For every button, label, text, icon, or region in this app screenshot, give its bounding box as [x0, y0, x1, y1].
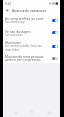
button[interactable]: Home	[27, 108, 36, 117]
staticText: Ao compartilhar, ao ouvir	[5, 16, 44, 20]
staticText: 9:41	[5, 2, 12, 6]
staticText: Ye nao dusagem	[5, 29, 31, 33]
staticText: Mostrando mais pessoas perto e sem impre…	[5, 54, 50, 62]
staticText: Loc nao usar	[5, 33, 23, 37]
button[interactable]: Toggle	[52, 57, 58, 60]
button[interactable]: Mostrador	[3, 39, 60, 53]
button[interactable]: Back	[3, 7, 12, 14]
button[interactable]: Ye nao dusagem	[3, 26, 60, 39]
button[interactable]: Mostrando mais pessoas perto e sem impre…	[3, 53, 60, 63]
staticText: Mostrador	[5, 40, 22, 44]
staticText: Loc center subtitle here are	[5, 44, 43, 48]
staticText: Loc center-top	[5, 20, 25, 24]
button[interactable]: Back	[11, 108, 20, 117]
button[interactable]: Toggle	[52, 45, 58, 48]
button[interactable]: Ao compartilhar, ao ouvir	[3, 14, 60, 26]
staticText: mais linha	[5, 48, 19, 52]
button[interactable]: Toggle	[52, 19, 58, 22]
button[interactable]: Toggle	[52, 31, 58, 34]
staticText: Avancado variacoes	[12, 8, 46, 13]
button[interactable]: Recents	[44, 108, 53, 117]
